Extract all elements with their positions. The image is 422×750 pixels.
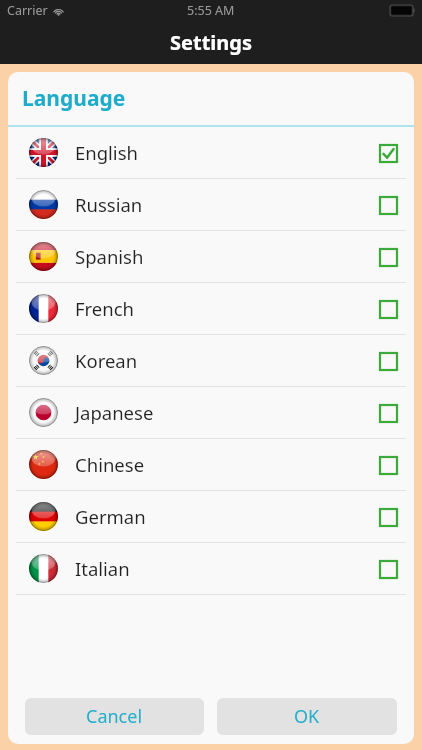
staticText: Italian <box>75 556 130 581</box>
staticText: Spanish <box>75 244 144 269</box>
button[interactable]: OK <box>217 698 397 735</box>
button[interactable]: Italian <box>8 543 414 594</box>
button[interactable]: Korean <box>8 335 414 386</box>
staticText: Chinese <box>75 452 145 477</box>
button[interactable]: Japanese <box>8 387 414 438</box>
staticText: Russian <box>75 192 143 217</box>
staticText: Carrier <box>7 2 48 19</box>
staticText: French <box>75 296 135 321</box>
staticText: Cancel <box>86 704 143 729</box>
button[interactable]: English <box>8 127 414 178</box>
staticText: Settings <box>170 29 252 56</box>
staticText: 5:55 AM <box>187 2 235 19</box>
staticText: OK <box>294 704 320 729</box>
staticText: Japanese <box>75 400 154 425</box>
button[interactable]: French <box>8 283 414 334</box>
button[interactable]: German <box>8 491 414 542</box>
staticText: German <box>75 504 146 529</box>
staticText: Korean <box>75 348 138 373</box>
button[interactable]: Russian <box>8 179 414 230</box>
staticText: English <box>75 140 138 165</box>
staticText: Language <box>22 84 126 113</box>
button[interactable]: Cancel <box>25 698 204 735</box>
button[interactable]: Spanish <box>8 231 414 282</box>
button[interactable]: Chinese <box>8 439 414 490</box>
